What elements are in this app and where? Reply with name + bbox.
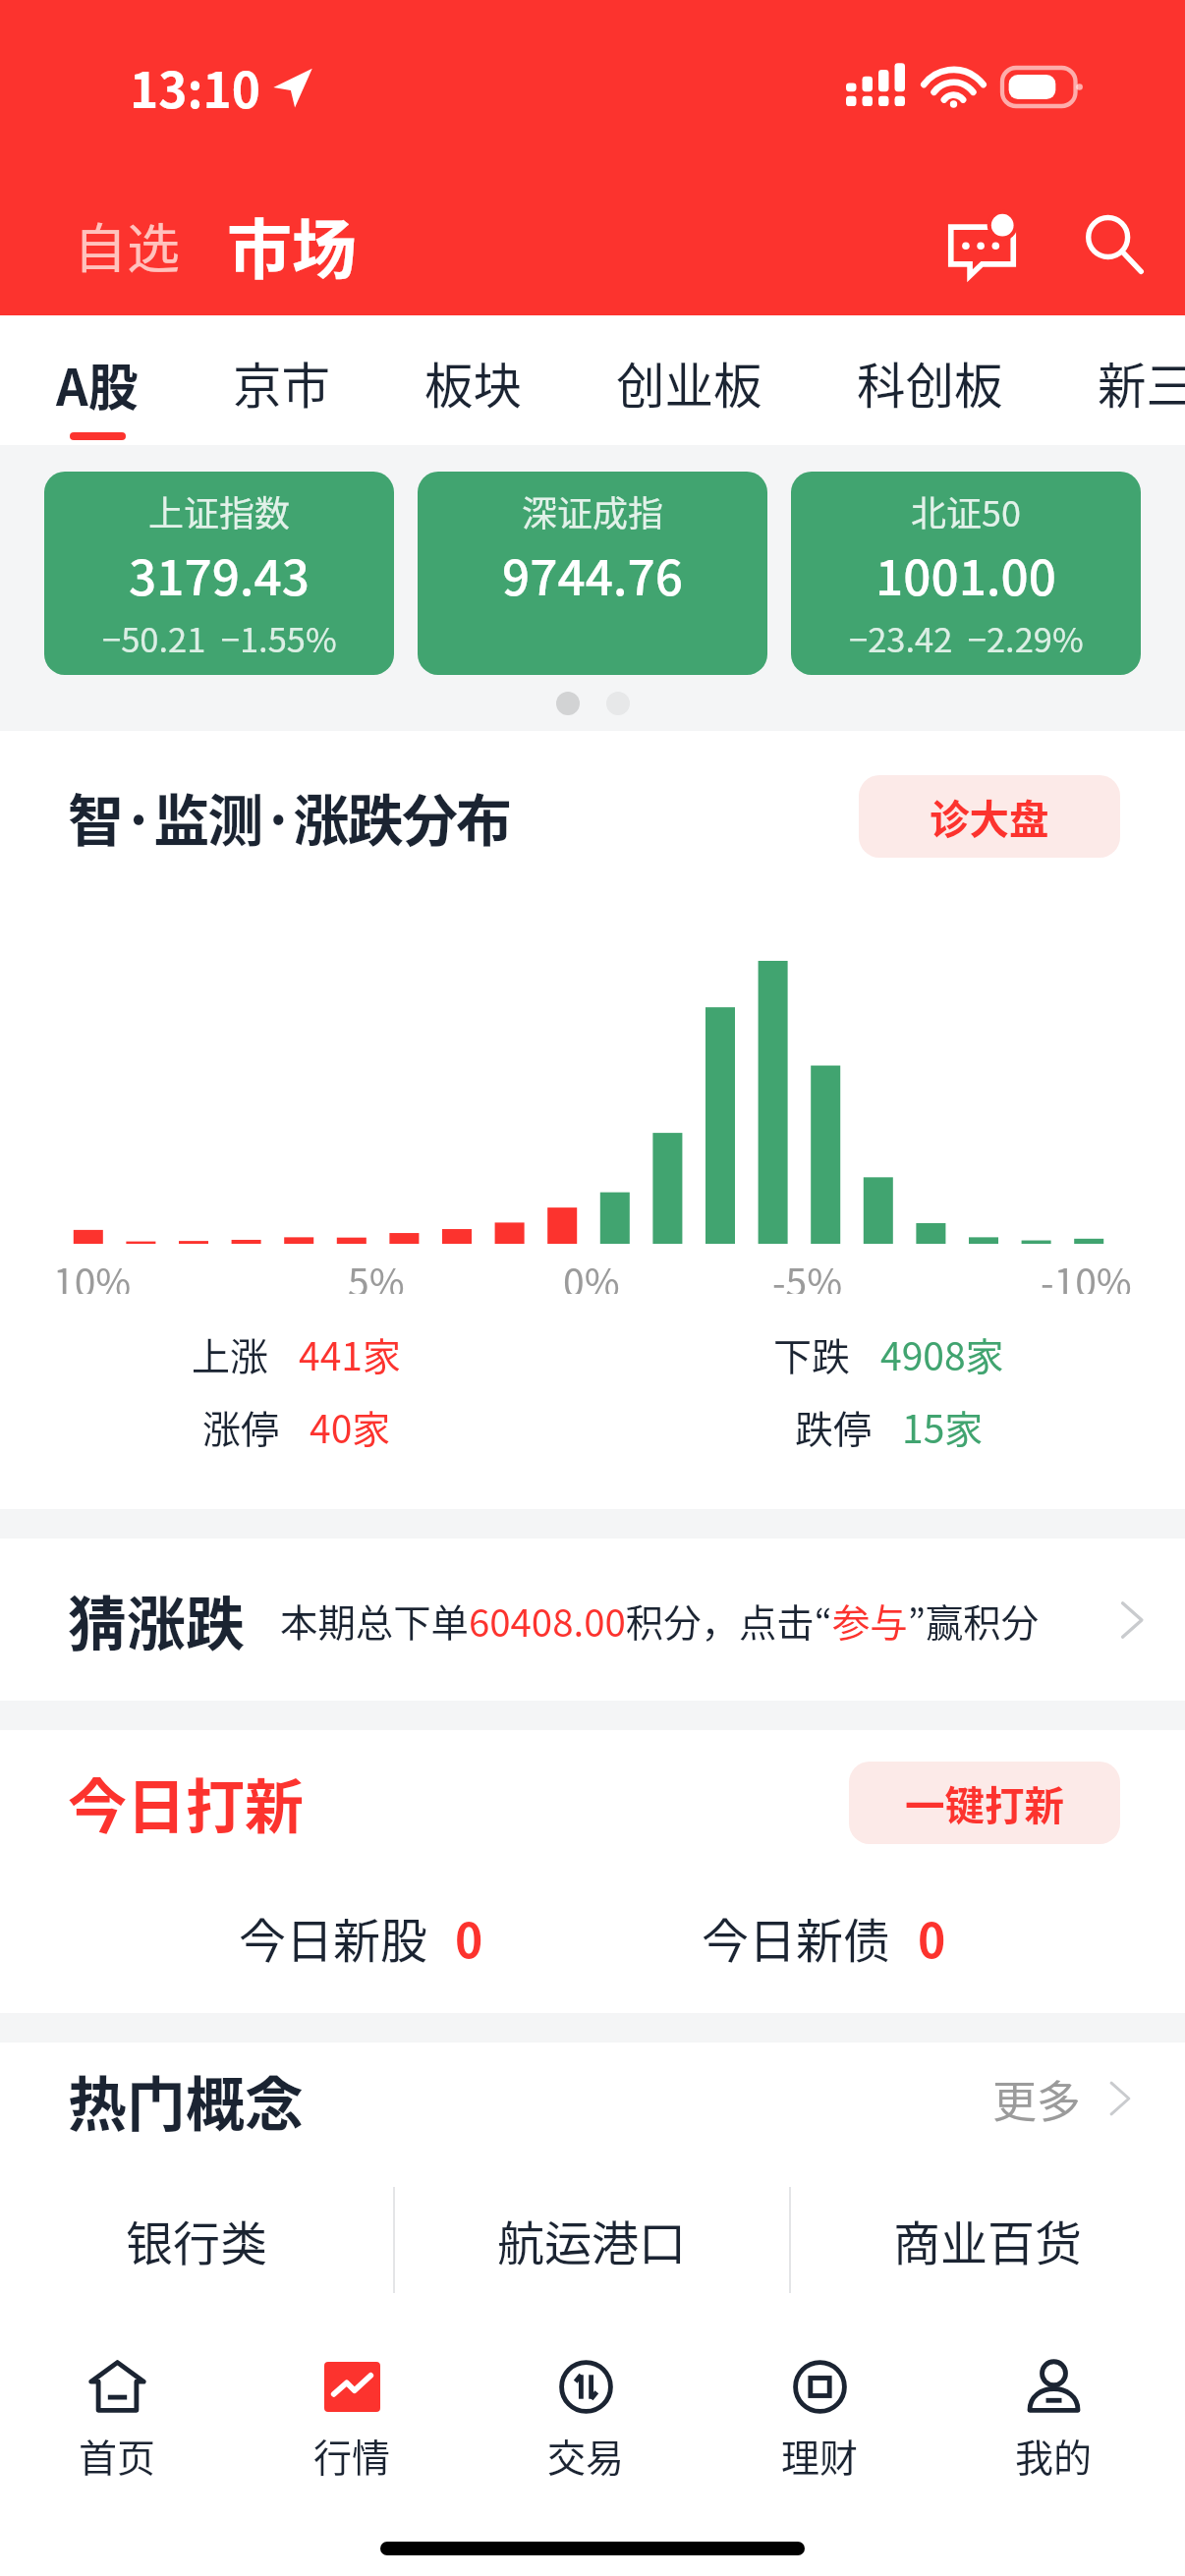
button[interactable]: 北证50	[791, 472, 1141, 675]
button[interactable]: 诊大盘	[859, 775, 1120, 858]
staticText: 今日新股	[239, 1903, 428, 1972]
button[interactable]: 今日新股	[239, 1903, 483, 1972]
staticText: 10%	[53, 1253, 132, 1294]
staticText: 今日打新	[68, 1760, 304, 1845]
button[interactable]: 理财	[703, 2355, 936, 2483]
staticText: 下跌	[773, 1326, 851, 1381]
staticText: 市场	[227, 197, 357, 292]
button[interactable]: 板块	[424, 315, 522, 438]
button[interactable]: Messages	[917, 180, 1046, 309]
button[interactable]: 首页	[0, 2355, 235, 2483]
button[interactable]: A股	[56, 315, 139, 440]
staticText: 北证50	[911, 485, 1021, 536]
staticText: 我的	[1015, 2428, 1093, 2483]
staticText: 5%	[348, 1253, 405, 1294]
staticText: 13:10	[130, 52, 260, 123]
button[interactable]: 自选	[0, 192, 192, 298]
staticText: 441家	[299, 1326, 401, 1381]
staticText: 0	[455, 1903, 483, 1972]
button[interactable]: 市场	[221, 183, 363, 307]
staticText: A股	[56, 348, 139, 420]
staticText: 40家	[310, 1399, 391, 1454]
staticText: 智·监测·涨跌分布	[68, 776, 511, 858]
staticText: 9744.76	[502, 539, 684, 610]
staticText: 深证成指	[522, 485, 664, 536]
staticText: 猜涨跌	[68, 1577, 245, 1662]
staticText: 3179.43	[129, 539, 310, 610]
button[interactable]: 行情	[235, 2355, 469, 2483]
button[interactable]: 新三板	[1098, 315, 1185, 438]
staticText: 热门概念	[68, 2057, 304, 2140]
staticText: -5%	[772, 1253, 843, 1294]
staticText: 自选	[74, 206, 180, 283]
staticText: 首页	[79, 2428, 156, 2483]
button[interactable]: 深证成指	[418, 472, 767, 675]
staticText: 涨停	[202, 1399, 280, 1454]
staticText: 新三板	[1098, 348, 1185, 419]
staticText: 银行类	[126, 2206, 268, 2274]
button[interactable]: 科创板	[857, 315, 1003, 438]
staticText: 15家	[902, 1399, 984, 1454]
staticText: 行情	[313, 2428, 391, 2483]
button[interactable]: 航运港口	[395, 2187, 789, 2293]
staticText: 今日新债	[702, 1903, 891, 1972]
staticText: 京市	[233, 348, 330, 419]
staticText: 4908家	[880, 1326, 1004, 1381]
staticText: 交易	[547, 2428, 625, 2483]
staticText: 上涨	[192, 1326, 269, 1381]
button[interactable]: 京市	[233, 315, 330, 438]
staticText: 创业板	[616, 348, 762, 419]
button[interactable]: 创业板	[616, 315, 762, 438]
staticText: 本期总下单60408.00积分，点击“参与”赢积分	[280, 1593, 1040, 1648]
staticText: 板块	[424, 348, 522, 419]
button[interactable]: 商业百货	[791, 2187, 1185, 2293]
staticText: 理财	[781, 2428, 859, 2483]
staticText: 1001.00	[875, 539, 1057, 610]
button[interactable]: 上证指数	[44, 472, 394, 675]
staticText: 商业百货	[893, 2206, 1083, 2274]
button[interactable]: Search	[1049, 180, 1179, 309]
button[interactable]: 今日新债	[702, 1903, 946, 1972]
staticText: 更多	[992, 2067, 1082, 2131]
staticText: −50.21 −1.55%	[102, 613, 337, 662]
staticText: 0	[918, 1903, 946, 1972]
staticText: 科创板	[857, 348, 1003, 419]
button[interactable]: 更多	[992, 2060, 1150, 2137]
staticText: 跌停	[795, 1399, 873, 1454]
staticText: 上证指数	[148, 485, 291, 536]
staticText: −23.42 −2.29%	[849, 613, 1084, 662]
staticText: 诊大盘	[930, 788, 1049, 846]
staticText: -10%	[1041, 1253, 1132, 1294]
button[interactable]: 交易	[469, 2355, 703, 2483]
button[interactable]: 猜涨跌	[0, 1539, 1185, 1701]
staticText: 0%	[563, 1253, 620, 1294]
staticText: 航运港口	[497, 2206, 687, 2274]
button[interactable]: 我的	[936, 2355, 1170, 2483]
button[interactable]: 银行类	[0, 2187, 393, 2293]
button[interactable]: 一键打新	[849, 1762, 1120, 1844]
staticText: 一键打新	[905, 1774, 1064, 1832]
